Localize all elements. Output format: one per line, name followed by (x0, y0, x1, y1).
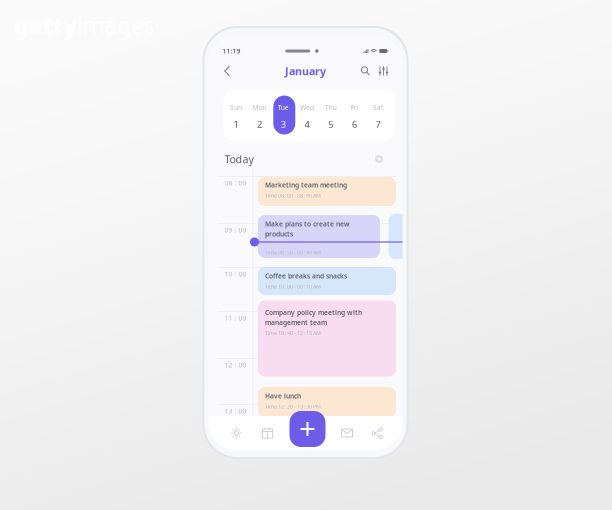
button[interactable]: Search (356, 62, 374, 80)
button[interactable]: Add event (289, 411, 325, 447)
button[interactable]: Fri (343, 89, 366, 141)
button[interactable]: Calendar (261, 427, 273, 439)
button[interactable]: Mon (248, 89, 271, 141)
button[interactable]: Filter (374, 62, 392, 80)
staticText: Make plans to create new products (265, 219, 350, 238)
staticText: 08 : 00 (224, 179, 246, 187)
staticText: Time 12 : 20 - 13 : 30 PM (265, 403, 321, 410)
button[interactable]: Wed (295, 89, 319, 141)
staticText: Have lunch (265, 391, 301, 400)
staticText: 12 : 00 (224, 361, 246, 369)
button[interactable]: Settings (371, 151, 386, 166)
staticText: Wed (300, 103, 314, 112)
staticText: Time 10 : 40 - 12 : 15 AM (265, 329, 321, 337)
button[interactable]: Overview (230, 427, 242, 439)
staticText: Mon (253, 103, 267, 112)
button[interactable]: Back (218, 60, 235, 81)
staticText: Tue (278, 103, 289, 112)
button[interactable]: Tue (271, 89, 295, 141)
button[interactable]: Share (371, 427, 383, 439)
staticText: Time 08 : 00 - 08 : 40 AM (265, 192, 321, 199)
button[interactable]: Messages (341, 427, 353, 439)
staticText: 13 : 00 (224, 407, 246, 415)
button[interactable]: Coffee breaks and snacks (258, 267, 396, 295)
button[interactable]: Company policy meeting with management t… (258, 300, 396, 376)
button[interactable]: Marketing team meeting (258, 177, 396, 206)
staticText: Today (224, 152, 253, 166)
staticText: 3 (281, 118, 286, 130)
button[interactable]: Sat (366, 89, 390, 141)
button[interactable]: Have lunch (258, 387, 396, 417)
staticText: Fri (350, 103, 358, 112)
staticText: Thu (325, 103, 337, 112)
staticText: 11:19 (222, 47, 240, 55)
staticText: 4 (304, 118, 309, 130)
staticText: 10 : 00 (224, 270, 246, 278)
staticText: Coffee breaks and snacks (265, 271, 347, 280)
staticText: Time 08 : 50 - 09 : 40 AM (265, 249, 321, 256)
staticText: Company policy meeting with management t… (265, 308, 362, 327)
button[interactable]: Sun (224, 89, 248, 141)
button[interactable]: Thu (319, 89, 343, 141)
staticText: 2 (257, 118, 262, 130)
staticText: January (285, 64, 326, 78)
staticText: 7 (376, 118, 381, 130)
staticText: Sat (373, 103, 383, 112)
staticText: 6 (352, 118, 357, 130)
staticText: 1 (233, 118, 238, 130)
staticText: Marketing team meeting (265, 180, 347, 189)
staticText: 09 : 00 (224, 226, 246, 234)
button[interactable]: Make plans to create new products (258, 215, 380, 258)
staticText: Time 10 : 00 - 00 : 10 AM (265, 283, 321, 290)
staticText: 5 (328, 118, 333, 130)
staticText: Sun (230, 103, 242, 112)
staticText: 11 : 00 (224, 314, 246, 322)
